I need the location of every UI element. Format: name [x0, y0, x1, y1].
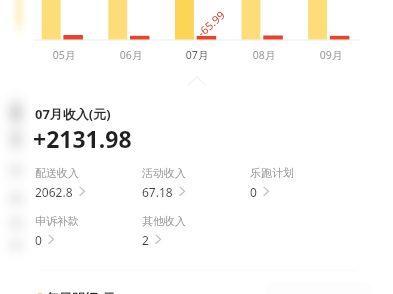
staticText: 67.18 [142, 184, 173, 200]
staticText: 07月 [167, 48, 227, 62]
button[interactable]: 其他收入 [141, 214, 237, 254]
staticText: 0 [35, 232, 42, 248]
staticText: 2062.8 [35, 184, 73, 200]
button[interactable]: 活动收入 [141, 166, 237, 206]
staticText: 申诉补款 [35, 214, 79, 228]
button[interactable]: 乐跑计划 [249, 166, 345, 206]
staticText: 06月 [101, 48, 161, 62]
staticText: -65.99 [194, 7, 228, 40]
staticText: 配送收入 [35, 166, 79, 180]
staticText: 07月收入(元) [35, 105, 111, 123]
staticText: +2131.98 [33, 123, 132, 154]
staticText: 2 [142, 232, 149, 248]
staticText: 09月 [301, 48, 361, 62]
staticText: 乐跑计划 [250, 166, 294, 180]
staticText: 每日明细(元) [46, 289, 120, 294]
button[interactable]: 申诉补款 [34, 214, 130, 254]
button[interactable]: 配送收入 [34, 166, 130, 206]
staticText: 活动收入 [142, 166, 186, 180]
staticText: 05月 [34, 48, 94, 62]
staticText: 0 [250, 184, 257, 200]
staticText: 08月 [234, 48, 294, 62]
staticText: 其他收入 [142, 214, 186, 228]
